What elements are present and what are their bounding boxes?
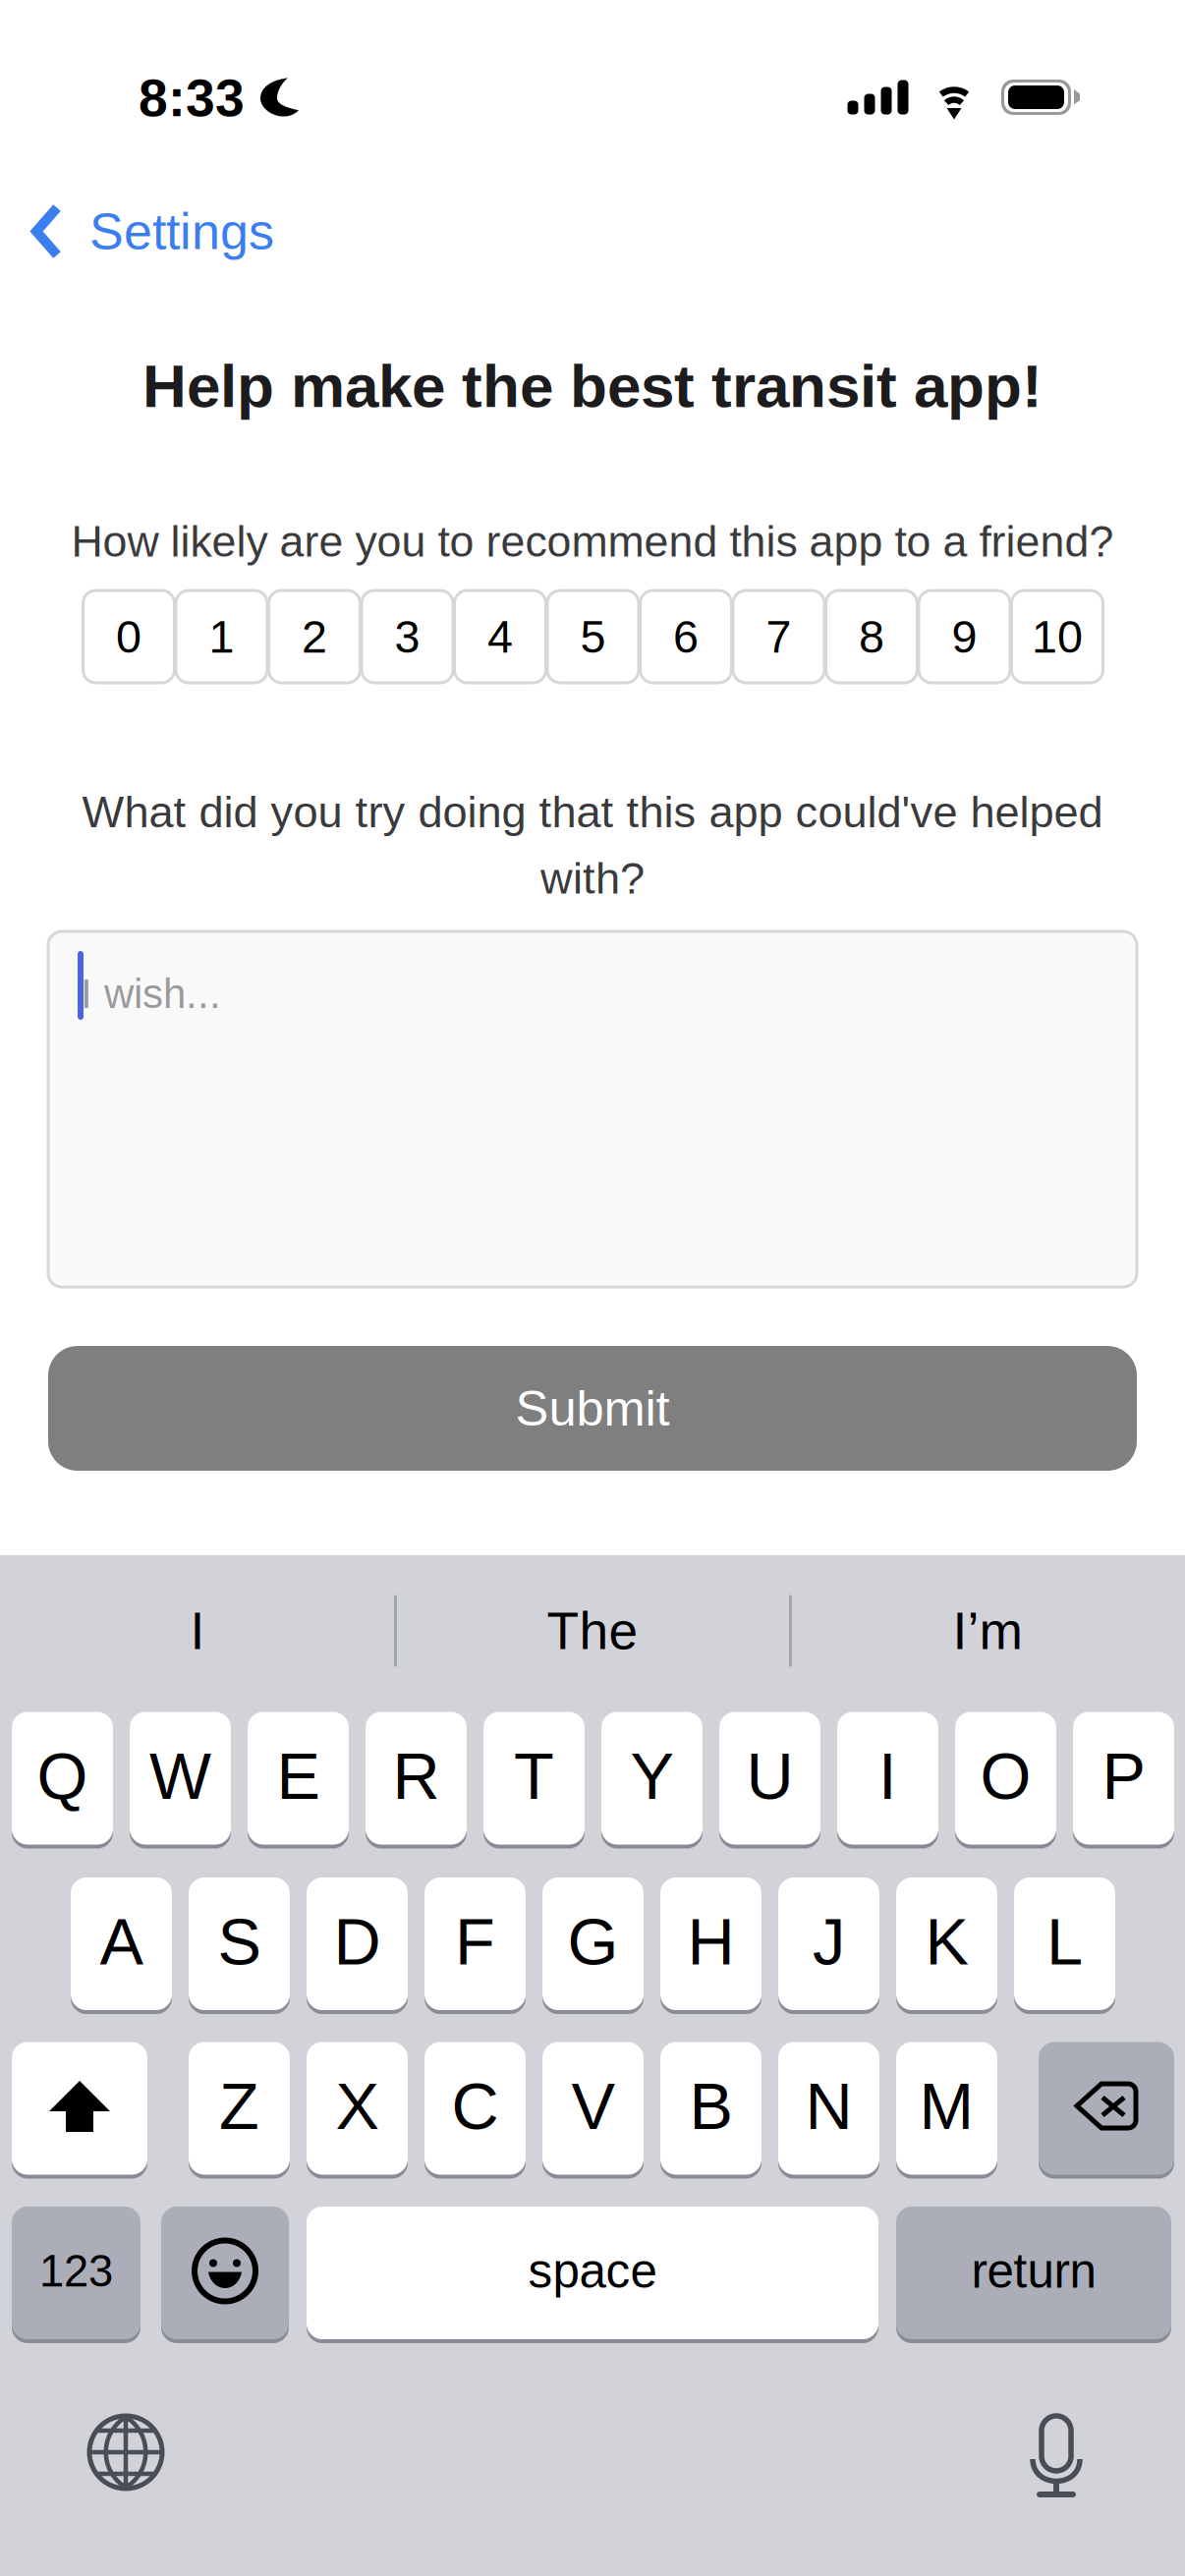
staticText: 1 <box>209 611 234 662</box>
staticText: Z <box>219 2070 259 2143</box>
staticText: I <box>878 1740 897 1813</box>
button[interactable]: 4 <box>454 590 546 683</box>
button[interactable]: I <box>0 1576 395 1686</box>
staticText: How likely are you to recommend this app… <box>71 517 1114 566</box>
staticText: 8 <box>859 611 884 662</box>
staticText: with? <box>540 853 645 903</box>
button[interactable]: R <box>366 1710 467 1847</box>
staticText: U <box>746 1740 793 1813</box>
button[interactable]: Emoji <box>161 2205 289 2341</box>
staticText: C <box>451 2070 499 2143</box>
button[interactable]: The <box>395 1576 790 1686</box>
button[interactable]: L <box>1014 1876 1115 2012</box>
button[interactable]: 9 <box>919 590 1010 683</box>
button[interactable]: N <box>778 2040 879 2177</box>
staticText: Help make the best transit app! <box>142 352 1043 420</box>
staticText: 123 <box>39 2246 113 2296</box>
staticText: W <box>149 1740 211 1813</box>
button[interactable]: I’m <box>790 1576 1185 1686</box>
staticText: 3 <box>395 611 420 662</box>
staticText: 8:33 <box>139 69 245 127</box>
button[interactable]: F <box>424 1876 526 2012</box>
staticText: Q <box>37 1740 88 1813</box>
staticText: 10 <box>1032 611 1083 662</box>
staticText: E <box>277 1740 320 1813</box>
staticText: B <box>689 2070 733 2143</box>
button[interactable]: Q <box>12 1710 113 1847</box>
button[interactable]: M <box>896 2040 997 2177</box>
button[interactable]: T <box>483 1710 585 1847</box>
button[interactable]: V <box>542 2040 644 2177</box>
button[interactable]: U <box>719 1710 820 1847</box>
button[interactable]: 3 <box>362 590 453 683</box>
staticText: J <box>813 1905 845 1978</box>
button[interactable]: 7 <box>733 590 824 683</box>
button[interactable]: Z <box>189 2040 290 2177</box>
staticText: S <box>218 1905 261 1978</box>
staticText: 6 <box>673 611 699 662</box>
staticText: I wish... <box>81 971 221 1017</box>
button[interactable]: D <box>307 1876 408 2012</box>
button[interactable]: 8 <box>826 590 917 683</box>
staticText: D <box>334 1905 381 1978</box>
button[interactable]: Delete <box>1039 2040 1174 2177</box>
staticText: F <box>455 1905 495 1978</box>
button[interactable]: Y <box>601 1710 703 1847</box>
staticText: G <box>567 1905 619 1978</box>
staticText: X <box>336 2070 379 2143</box>
staticText: return <box>971 2244 1096 2298</box>
button[interactable]: Next keyboard <box>85 2412 166 2492</box>
button[interactable]: X <box>307 2040 408 2177</box>
staticText: 7 <box>766 611 791 662</box>
button[interactable]: Submit <box>48 1346 1137 1471</box>
staticText: What did you try doing that this app cou… <box>82 787 1103 837</box>
button[interactable]: 123 <box>12 2205 141 2341</box>
button[interactable]: Dictation <box>1027 2413 1086 2501</box>
staticText: P <box>1102 1740 1145 1813</box>
staticText: K <box>925 1905 968 1978</box>
button[interactable]: O <box>955 1710 1056 1847</box>
staticText: L <box>1046 1905 1083 1978</box>
staticText: V <box>571 2070 615 2143</box>
button[interactable]: S <box>189 1876 290 2012</box>
staticText: 9 <box>952 611 977 662</box>
staticText: The <box>547 1602 638 1660</box>
button[interactable]: W <box>130 1710 231 1847</box>
button[interactable]: return <box>896 2205 1171 2341</box>
button[interactable]: 5 <box>547 590 639 683</box>
staticText: 4 <box>487 611 513 662</box>
staticText: A <box>100 1905 143 1978</box>
staticText: I’m <box>953 1602 1022 1660</box>
button[interactable]: A <box>71 1876 172 2012</box>
button[interactable]: G <box>542 1876 644 2012</box>
button[interactable]: B <box>660 2040 762 2177</box>
staticText: M <box>919 2070 974 2143</box>
button[interactable]: 1 <box>176 590 267 683</box>
button[interactable]: C <box>424 2040 526 2177</box>
button[interactable]: space <box>307 2205 878 2341</box>
staticText: 5 <box>580 611 606 662</box>
button[interactable]: 0 <box>83 590 174 683</box>
staticText: Y <box>630 1740 674 1813</box>
button[interactable]: 6 <box>640 590 732 683</box>
staticText: R <box>393 1740 440 1813</box>
button[interactable]: 10 <box>1012 590 1103 683</box>
button[interactable]: P <box>1073 1710 1174 1847</box>
staticText: 0 <box>116 611 141 662</box>
button[interactable]: Shift <box>12 2040 147 2177</box>
staticText: I <box>190 1602 205 1660</box>
button[interactable]: J <box>778 1876 879 2012</box>
staticText: H <box>687 1905 734 1978</box>
staticText: space <box>528 2244 657 2298</box>
staticText: Settings <box>89 203 274 260</box>
button[interactable]: H <box>660 1876 762 2012</box>
button[interactable]: E <box>248 1710 349 1847</box>
staticText: 2 <box>302 611 327 662</box>
button[interactable]: I <box>837 1710 938 1847</box>
staticText: N <box>805 2070 852 2143</box>
button[interactable]: K <box>896 1876 997 2012</box>
staticText: T <box>514 1740 554 1813</box>
button[interactable]: Settings <box>0 190 393 273</box>
staticText: Submit <box>515 1381 670 1436</box>
button[interactable]: 2 <box>269 590 360 683</box>
